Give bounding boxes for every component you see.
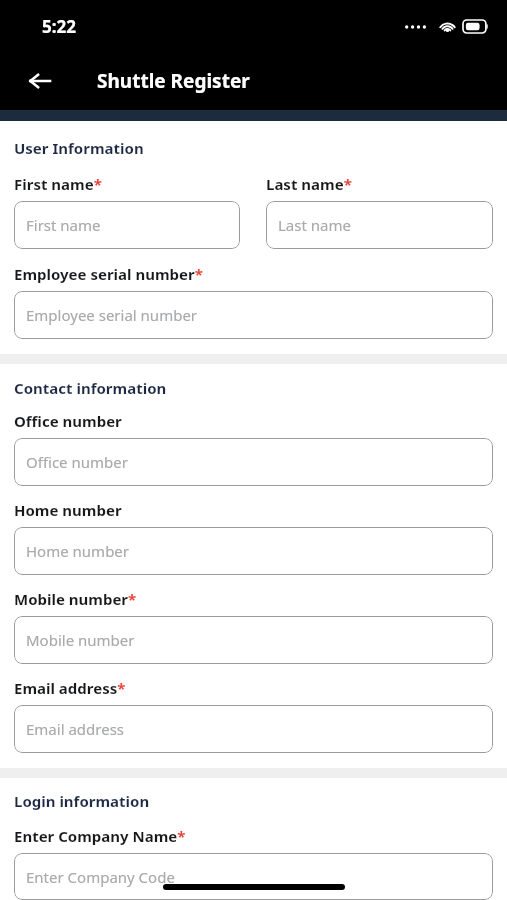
button[interactable]: Home number: [14, 527, 493, 575]
staticText: Home number: [14, 500, 122, 520]
button[interactable]: Mobile number: [14, 616, 493, 664]
staticText: Mobile number*: [14, 589, 137, 609]
button[interactable]: Email address: [14, 705, 493, 753]
staticText: Login information: [14, 791, 150, 811]
button[interactable]: Back: [18, 59, 62, 103]
staticText: Last name*: [266, 174, 352, 194]
button[interactable]: Enter Company Code: [14, 853, 493, 900]
staticText: First name: [26, 215, 101, 235]
staticText: Email address*: [14, 678, 126, 698]
staticText: Last name: [278, 215, 351, 235]
button[interactable]: First name: [14, 201, 240, 249]
staticText: Contact information: [14, 378, 167, 398]
staticText: Office number: [14, 411, 122, 431]
staticText: Shuttle Register: [97, 68, 250, 94]
button[interactable]: Last name: [266, 201, 493, 249]
staticText: First name*: [14, 174, 102, 194]
staticText: Home number: [26, 541, 130, 561]
staticText: Email address: [26, 719, 125, 739]
staticText: User Information: [14, 138, 144, 158]
staticText: Employee serial number: [26, 305, 198, 325]
staticText: Enter Company Code: [26, 867, 175, 887]
button[interactable]: Office number: [14, 438, 493, 486]
staticText: 5:22: [42, 15, 76, 38]
staticText: Office number: [26, 452, 128, 472]
staticText: Mobile number: [26, 630, 135, 650]
button[interactable]: Employee serial number: [14, 291, 493, 339]
staticText: Enter Company Name*: [14, 826, 186, 846]
staticText: Employee serial number*: [14, 264, 203, 284]
